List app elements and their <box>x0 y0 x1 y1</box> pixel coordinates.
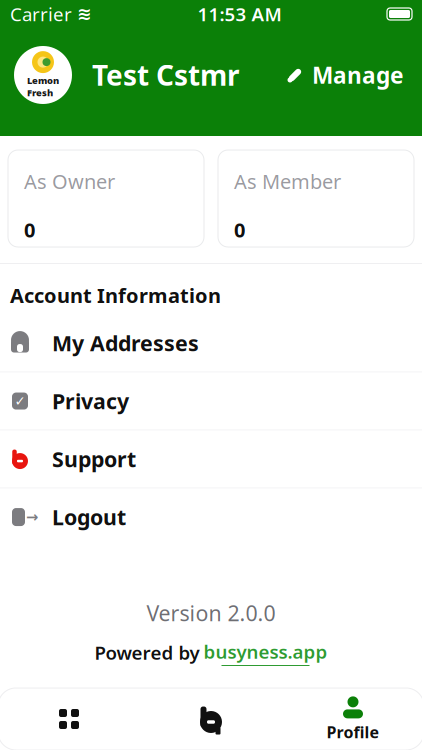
staticText: Version 2.0.0 <box>146 599 275 627</box>
staticText: → <box>26 509 38 525</box>
staticText: ≋ <box>77 4 92 24</box>
staticText: 0 <box>24 217 35 243</box>
staticText: 0 <box>234 217 245 243</box>
staticText: Account Information <box>10 282 221 309</box>
staticText: 11:53 AM <box>197 2 281 26</box>
button[interactable]: Dashboard <box>0 688 140 750</box>
staticText: Privacy <box>52 387 129 415</box>
staticText: As Member <box>234 168 341 195</box>
button[interactable]: Manage <box>282 54 408 96</box>
staticText: Powered by <box>94 640 199 665</box>
staticText: As Owner <box>24 168 115 195</box>
staticText: Lemon Fresh <box>27 74 59 99</box>
staticText: Logout <box>52 503 126 531</box>
staticText: Manage <box>312 60 404 90</box>
staticText: ✓ <box>14 393 25 409</box>
staticText: Profile <box>326 721 379 743</box>
staticText: busyness.app <box>203 639 327 664</box>
button[interactable]: My Addresses <box>0 315 422 372</box>
button[interactable]: Support <box>0 431 422 488</box>
staticText: Carrier <box>10 2 72 26</box>
button[interactable]: ✓ <box>0 373 422 430</box>
button[interactable]: Profile <box>282 688 422 750</box>
staticText: Test Cstmr <box>92 56 240 94</box>
button[interactable]: Busyness <box>140 688 282 750</box>
staticText: My Addresses <box>52 329 199 357</box>
staticText: Support <box>52 445 136 473</box>
button[interactable]: → <box>0 489 422 546</box>
button[interactable]: busyness.app <box>203 639 327 666</box>
